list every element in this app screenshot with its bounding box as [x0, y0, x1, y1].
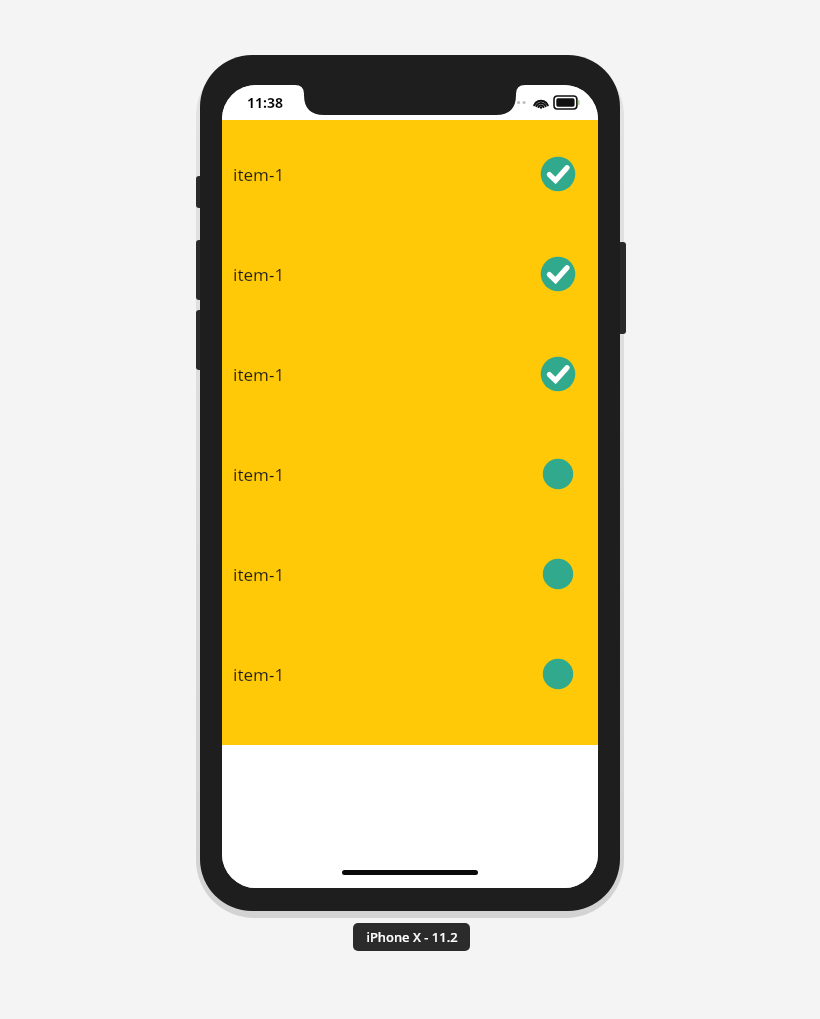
staticText: item-1 — [233, 663, 285, 686]
button[interactable]: Selected — [539, 355, 577, 393]
staticText: item-1 — [233, 563, 285, 586]
button[interactable]: item-1 — [222, 124, 598, 224]
button[interactable]: Selected — [539, 155, 577, 193]
button[interactable]: item-1 — [222, 224, 598, 324]
staticText: item-1 — [233, 363, 285, 386]
staticText: iPhone X - 11.2 — [366, 928, 458, 946]
button[interactable]: Not selected — [539, 555, 577, 593]
button[interactable]: Selected — [539, 255, 577, 293]
staticText: item-1 — [233, 463, 285, 486]
button[interactable]: Not selected — [539, 655, 577, 693]
staticText: item-1 — [233, 263, 285, 286]
staticText: item-1 — [233, 163, 285, 186]
staticText: 11:38 — [247, 93, 283, 112]
button[interactable]: item-1 — [222, 324, 598, 424]
button[interactable]: item-1 — [222, 624, 598, 724]
button[interactable]: item-1 — [222, 424, 598, 524]
button[interactable]: Not selected — [539, 455, 577, 493]
button[interactable]: item-1 — [222, 524, 598, 624]
